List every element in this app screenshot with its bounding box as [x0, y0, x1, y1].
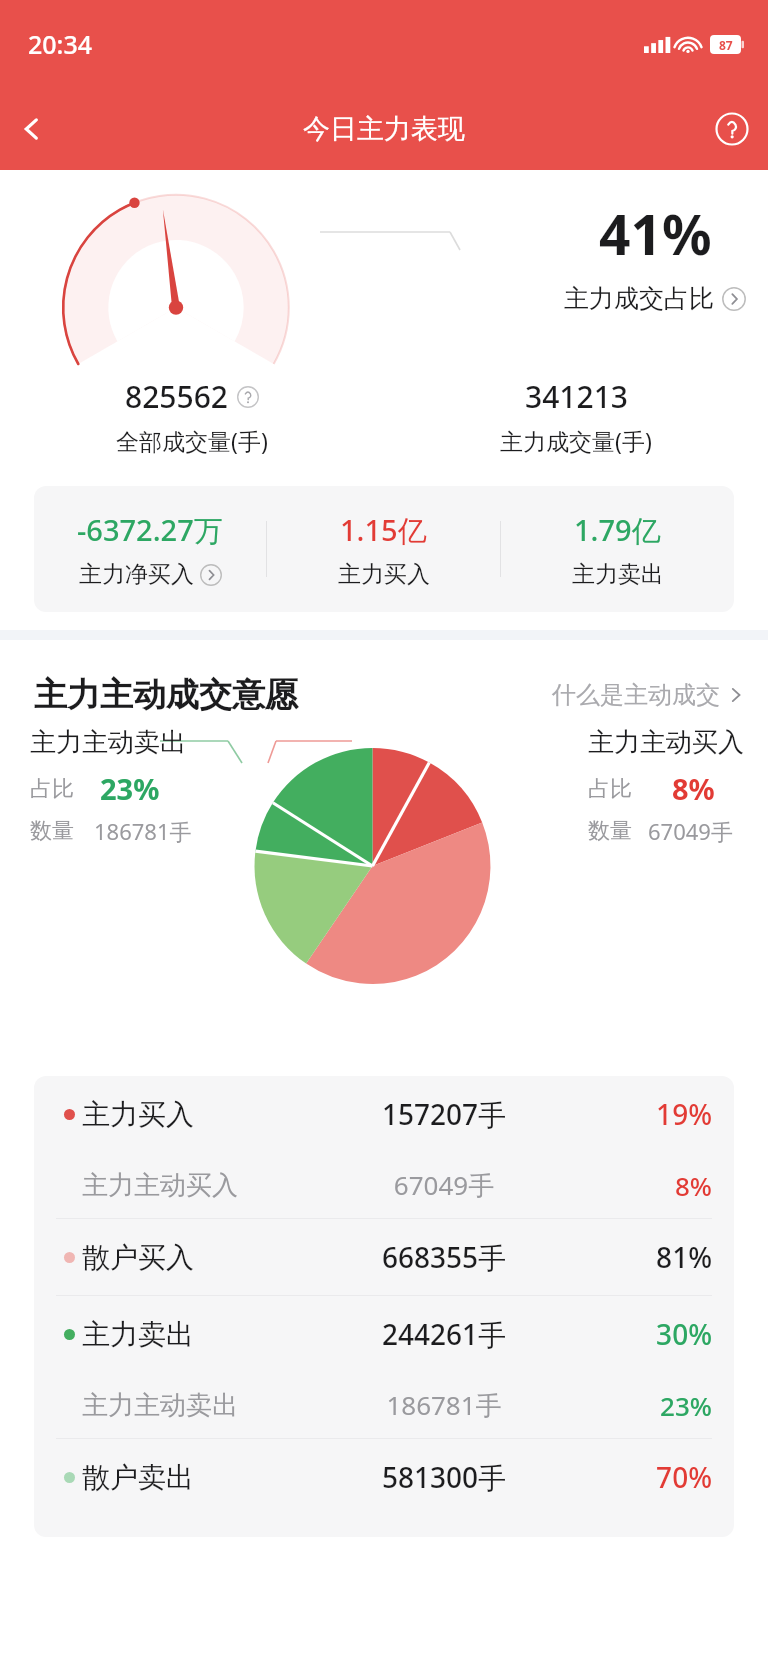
staticText: 81%: [626, 1238, 712, 1276]
staticText: 41%: [599, 196, 712, 271]
button[interactable]: -6372.27万: [34, 486, 266, 612]
staticText: 67049手: [262, 1167, 626, 1203]
button[interactable]: 主力买入: [34, 1076, 734, 1218]
staticText: 157207手: [262, 1095, 626, 1133]
staticText: 主力成交量(手): [500, 425, 652, 456]
staticText: 主力买入: [338, 560, 430, 589]
staticText: 主力主动买入: [588, 726, 744, 759]
staticText: 今日主力表现: [303, 112, 465, 146]
staticText: 87: [719, 37, 733, 53]
staticText: 主力主动成交意愿: [34, 674, 298, 716]
staticText: 30%: [626, 1315, 712, 1353]
staticText: 186781手: [262, 1387, 626, 1423]
staticText: 主力卖出: [572, 560, 664, 589]
staticText: 数量: [30, 817, 74, 845]
staticText: 20:34: [28, 27, 93, 61]
staticText: 70%: [626, 1458, 712, 1496]
staticText: 67049手: [648, 816, 733, 846]
button[interactable]: Help: [696, 93, 768, 165]
staticText: 581300手: [262, 1458, 626, 1496]
button[interactable]: 散户卖出: [34, 1439, 734, 1515]
staticText: 23%: [100, 769, 160, 808]
staticText: 825562: [125, 376, 228, 417]
button[interactable]: 说明: [236, 385, 260, 409]
staticText: 主力主动卖出: [82, 1389, 262, 1422]
staticText: 主力净买入: [79, 560, 194, 589]
staticText: -6372.27万: [77, 510, 223, 550]
staticText: 主力主动买入: [82, 1169, 262, 1202]
staticText: 主力成交占比: [564, 283, 714, 314]
staticText: 散户卖出: [82, 1460, 262, 1495]
button[interactable]: 1.79亿: [501, 486, 734, 612]
staticText: 186781手: [94, 816, 192, 846]
staticText: 1.15亿: [340, 510, 427, 550]
button[interactable]: 主力卖出: [34, 1296, 734, 1438]
staticText: 散户买入: [82, 1240, 262, 1275]
button[interactable]: 1.15亿: [267, 486, 500, 612]
staticText: 数量: [588, 817, 632, 845]
staticText: 全部成交量(手): [116, 425, 268, 456]
staticText: 主力卖出: [82, 1317, 262, 1352]
staticText: 主力主动卖出: [30, 726, 186, 759]
staticText: 8%: [672, 769, 715, 808]
staticText: 23%: [626, 1388, 712, 1423]
staticText: 668355手: [262, 1238, 626, 1276]
button[interactable]: 散户买入: [34, 1219, 734, 1295]
staticText: 244261手: [262, 1315, 626, 1353]
staticText: 341213: [525, 376, 628, 417]
staticText: 主力买入: [82, 1097, 262, 1132]
staticText: 什么是主动成交: [552, 680, 720, 710]
staticText: 占比: [588, 775, 632, 803]
staticText: 占比: [30, 775, 74, 803]
staticText: 19%: [626, 1095, 712, 1133]
staticText: 8%: [626, 1168, 712, 1203]
staticText: 1.79亿: [574, 510, 661, 550]
button[interactable]: 什么是主动成交: [552, 680, 744, 710]
button[interactable]: Back: [0, 97, 64, 161]
button[interactable]: 主力成交占比: [564, 283, 746, 314]
